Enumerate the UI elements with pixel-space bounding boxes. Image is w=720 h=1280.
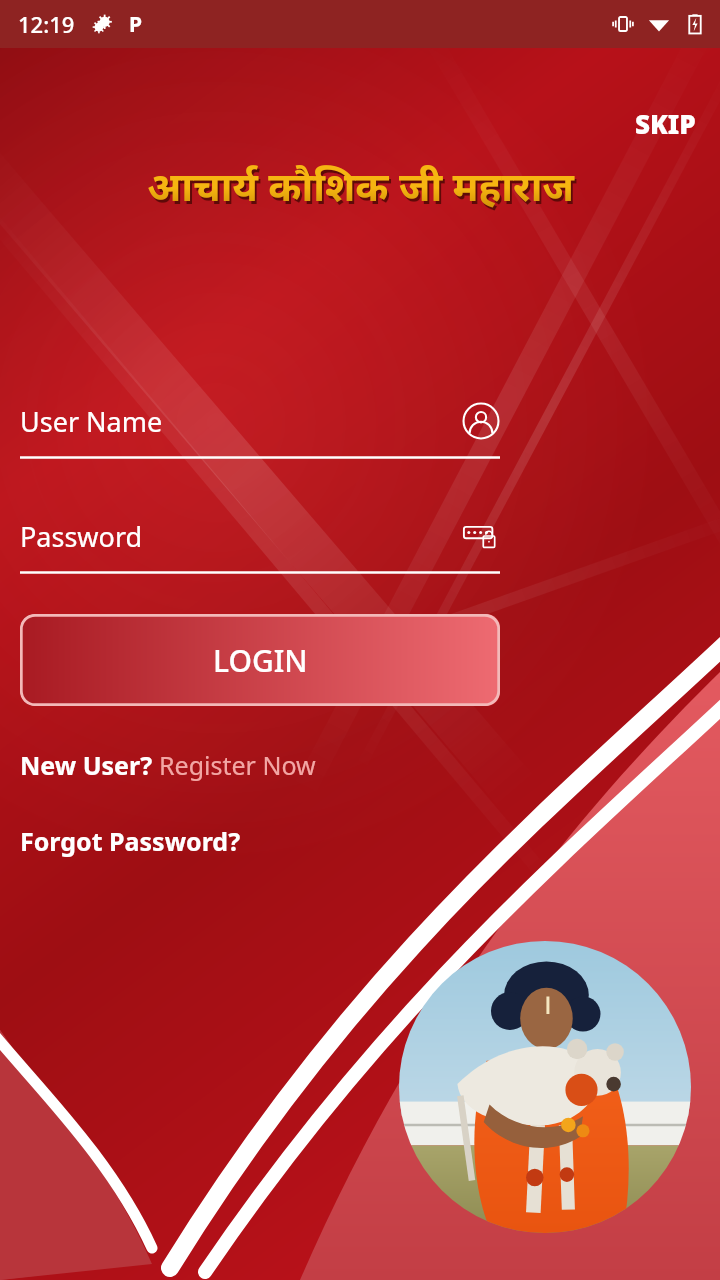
staticText: Password (20, 518, 462, 555)
button[interactable]: SKIP (627, 102, 704, 145)
staticText: SKIP (635, 106, 696, 141)
staticText: User Name (20, 403, 462, 440)
staticText: LOGIN (213, 640, 308, 681)
other: User Name (462, 402, 500, 440)
staticText: Forgot Password? (20, 824, 241, 858)
button[interactable]: User Name (20, 402, 500, 459)
staticText: New User? (20, 748, 159, 782)
staticText: P (129, 10, 143, 39)
staticText: 12:19 (18, 9, 75, 39)
button[interactable]: Password (20, 517, 500, 574)
button[interactable]: Forgot Password? (20, 824, 241, 858)
staticText: आचार्य कौशिक जी महाराज (147, 158, 574, 212)
staticText: Register Now (159, 748, 316, 782)
staticText: आचार्य कौशिक जी महाराज (149, 161, 576, 215)
other: Password (462, 517, 500, 555)
button[interactable]: Register Now (159, 748, 316, 782)
button[interactable]: LOGIN (20, 614, 500, 706)
